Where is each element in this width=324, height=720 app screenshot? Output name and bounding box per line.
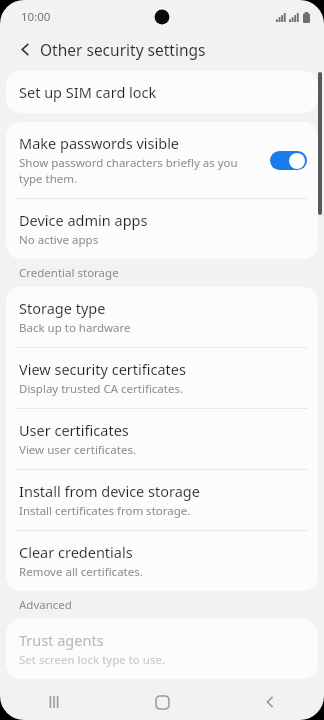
- staticText: Credential storage: [19, 265, 119, 281]
- staticText: Install certificates from storage.: [19, 503, 191, 519]
- button[interactable]: Back: [216, 684, 324, 720]
- staticText: Set screen lock type to use.: [19, 652, 165, 668]
- button[interactable]: Set up SIM card lock: [6, 71, 318, 113]
- button[interactable]: Device admin apps: [6, 199, 318, 259]
- staticText: Trust agents: [19, 630, 104, 650]
- button[interactable]: Make passwords visible toggle: [270, 151, 307, 170]
- staticText: Clear credentials: [19, 542, 133, 562]
- button[interactable]: Recents: [0, 684, 108, 720]
- button[interactable]: View security certificates: [6, 348, 318, 408]
- button[interactable]: Storage type: [6, 287, 318, 347]
- staticText: Install from device storage: [19, 481, 200, 501]
- button[interactable]: Home: [108, 684, 216, 720]
- staticText: Remove all certificates.: [19, 564, 143, 580]
- button[interactable]: Clear credentials: [6, 531, 318, 591]
- staticText: View user certificates.: [19, 442, 136, 458]
- staticText: User certificates: [19, 420, 129, 440]
- staticText: Display trusted CA certificates.: [19, 381, 184, 397]
- staticText: Device admin apps: [19, 210, 148, 230]
- button[interactable]: User certificates: [6, 409, 318, 469]
- button[interactable]: Back: [12, 36, 38, 62]
- staticText: 10:00: [21, 9, 51, 25]
- staticText: Other security settings: [40, 39, 206, 60]
- button[interactable]: Make passwords visible: [6, 122, 318, 198]
- staticText: Back up to hardware: [19, 320, 131, 336]
- staticText: Advanced: [19, 597, 72, 613]
- staticText: Storage type: [19, 298, 106, 318]
- button[interactable]: Trust agents: [6, 619, 318, 679]
- staticText: View security certificates: [19, 359, 186, 379]
- staticText: Show password characters briefly as you …: [19, 155, 262, 187]
- staticText: Set up SIM card lock: [19, 82, 157, 102]
- staticText: No active apps: [19, 232, 99, 248]
- button[interactable]: Install from device storage: [6, 470, 318, 530]
- staticText: Make passwords visible: [19, 133, 180, 153]
